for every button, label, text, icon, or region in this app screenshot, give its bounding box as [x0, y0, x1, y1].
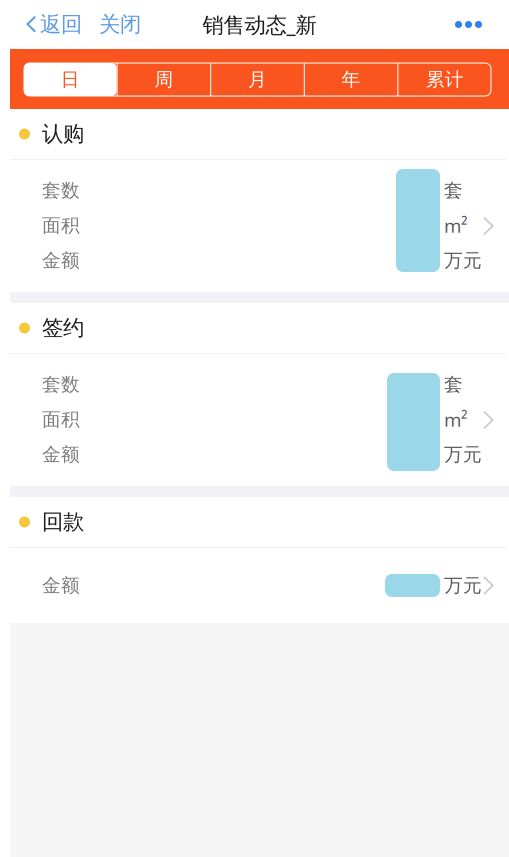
staticText: 年	[342, 68, 361, 91]
staticText: 万元	[444, 443, 482, 466]
staticText: 万元	[444, 249, 482, 272]
staticText: m²	[444, 213, 468, 238]
staticText: 万元	[444, 574, 482, 597]
button[interactable]: More options	[455, 9, 509, 40]
staticText: 周	[154, 68, 173, 91]
staticText: 月	[248, 68, 267, 91]
button[interactable]: 周	[118, 63, 210, 96]
staticText: 套	[444, 179, 463, 202]
button[interactable]: 返回	[10, 3, 82, 46]
button[interactable]: 年	[305, 63, 397, 96]
button[interactable]: 日	[24, 63, 117, 96]
staticText: 签约	[42, 315, 84, 341]
staticText: 面积	[42, 214, 80, 237]
staticText: 套数	[42, 373, 80, 396]
button[interactable]: 月	[211, 63, 304, 96]
staticText: 套	[444, 373, 463, 396]
staticText: 金额	[42, 443, 80, 466]
staticText: 返回	[40, 11, 82, 38]
staticText: 面积	[42, 408, 80, 431]
staticText: 销售动态_新	[202, 10, 316, 39]
staticText: 金额	[42, 249, 80, 272]
staticText: 套数	[42, 179, 80, 202]
staticText: m²	[444, 407, 468, 432]
button[interactable]: 关闭	[82, 3, 141, 46]
staticText: 累计	[426, 68, 464, 91]
staticText: 金额	[42, 574, 80, 597]
staticText: 回款	[42, 509, 84, 535]
button[interactable]: 累计	[398, 63, 491, 96]
staticText: 日	[61, 68, 80, 91]
staticText: 关闭	[99, 11, 141, 38]
staticText: 认购	[42, 121, 84, 147]
